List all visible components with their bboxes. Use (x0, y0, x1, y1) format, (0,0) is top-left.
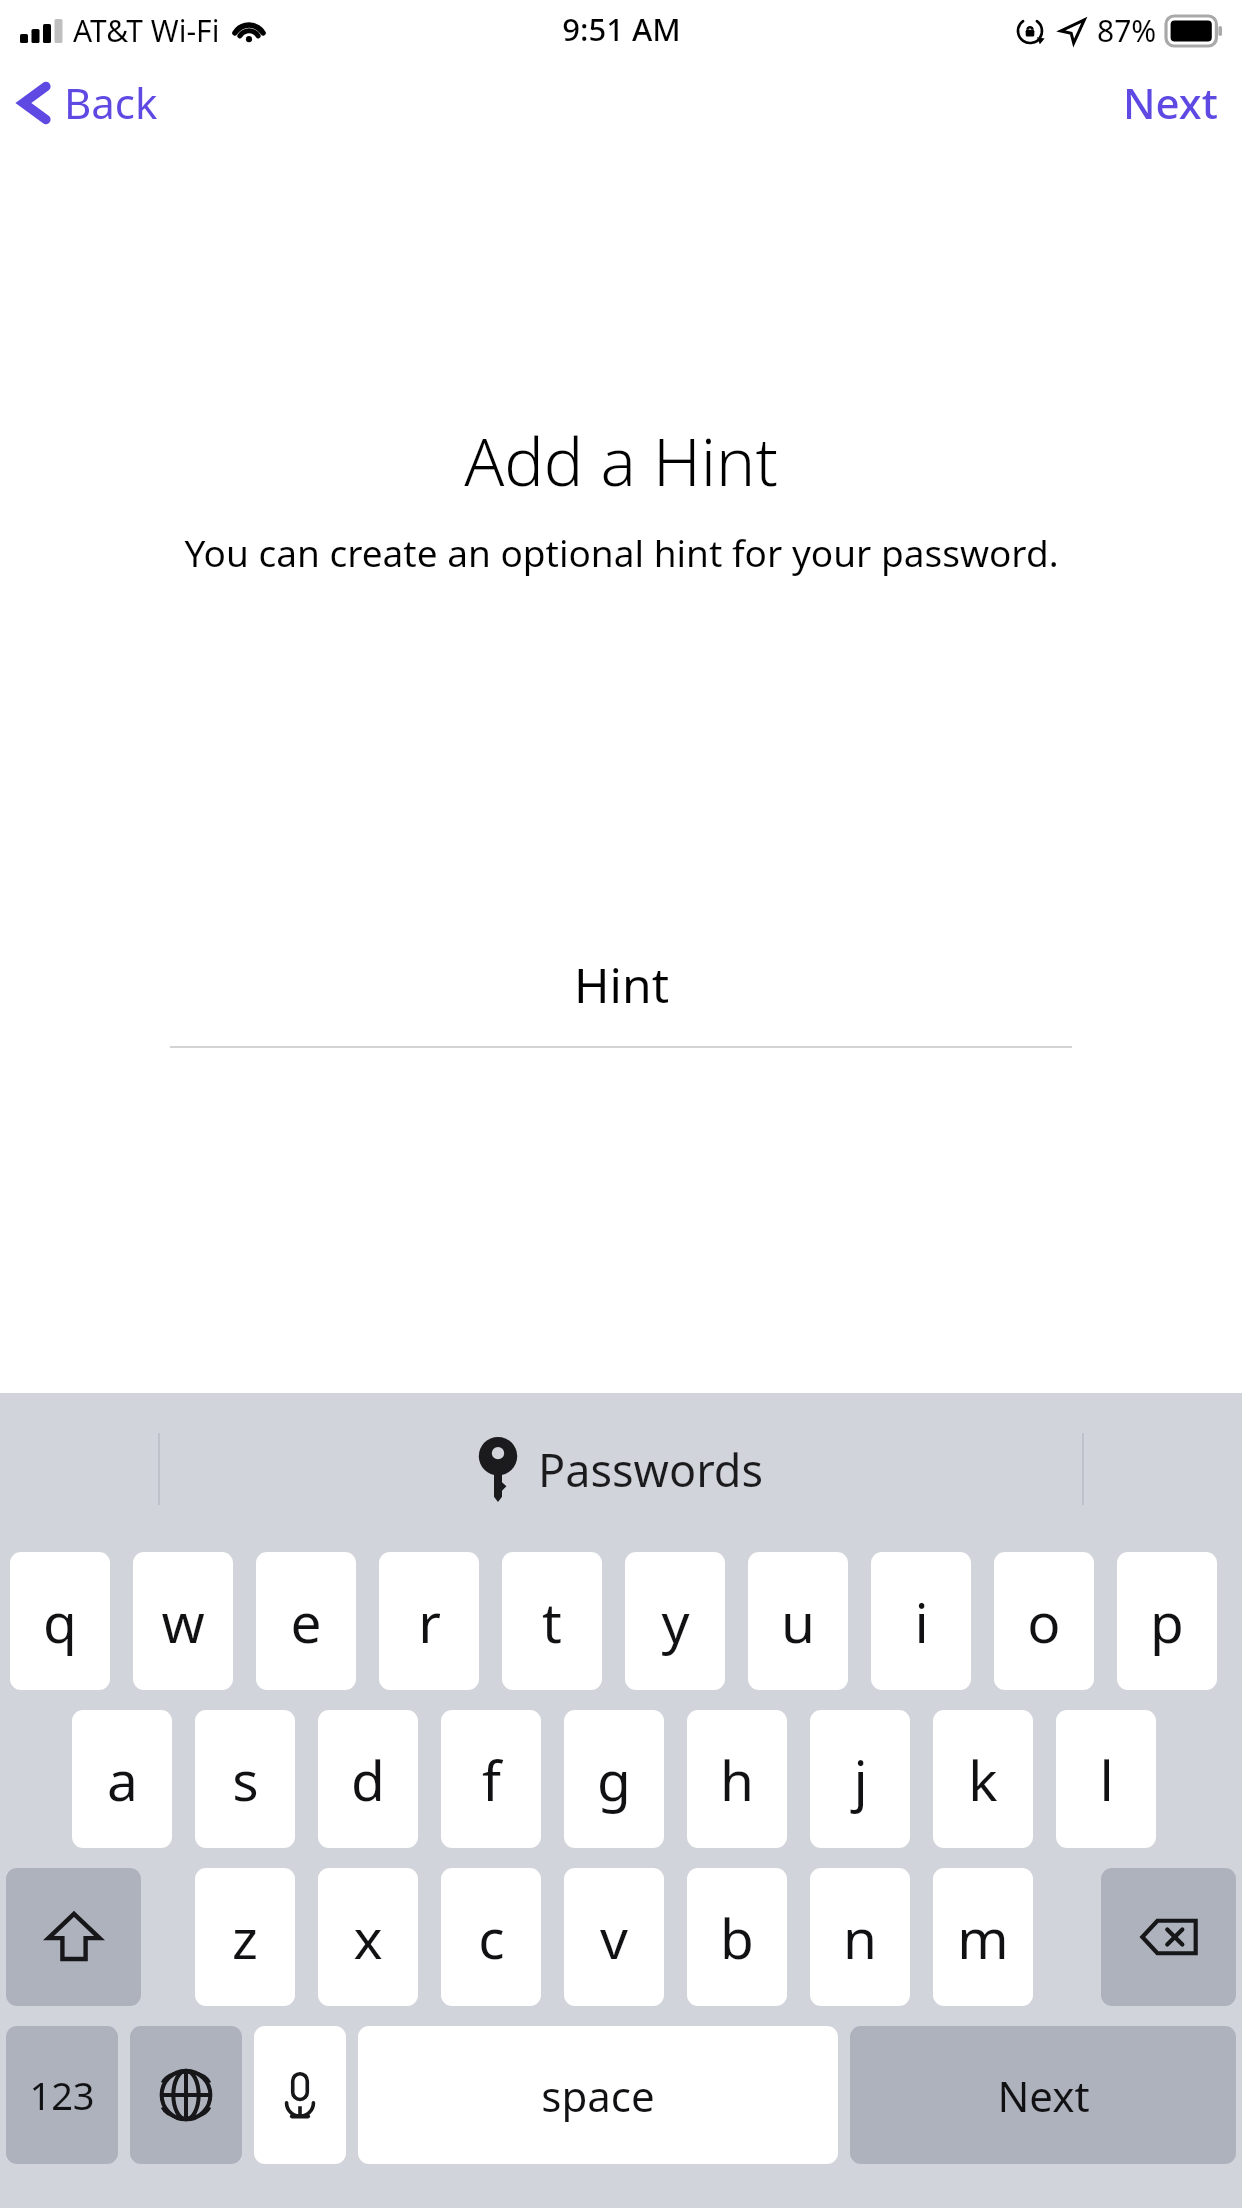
staticText: 87% (1097, 10, 1157, 51)
button[interactable]: j (810, 1710, 910, 1848)
button[interactable]: s (195, 1710, 295, 1848)
button[interactable]: Next (1099, 64, 1242, 141)
button[interactable]: Backspace (1101, 1868, 1236, 2006)
staticText: z (232, 1900, 258, 1975)
staticText: f (482, 1742, 501, 1817)
button[interactable]: a (72, 1710, 172, 1848)
staticText: i (914, 1584, 929, 1659)
staticText: Passwords (538, 1439, 764, 1500)
staticText: Hint (574, 952, 669, 1017)
button[interactable]: t (502, 1552, 602, 1690)
button[interactable]: v (564, 1868, 664, 2006)
staticText: t (542, 1584, 562, 1659)
button[interactable]: Next (850, 2026, 1236, 2164)
button[interactable]: p (1117, 1552, 1217, 1690)
staticText: y (661, 1584, 690, 1659)
button[interactable]: c (441, 1868, 541, 2006)
button[interactable]: e (256, 1552, 356, 1690)
staticText: Next (1123, 74, 1218, 131)
staticText: Add a Hint (464, 415, 778, 505)
staticText: n (843, 1900, 877, 1975)
button[interactable]: m (933, 1868, 1033, 2006)
staticText: u (781, 1584, 815, 1659)
staticText: b (720, 1900, 754, 1975)
staticText: space (541, 2067, 655, 2124)
button[interactable]: h (687, 1710, 787, 1848)
staticText: d (351, 1742, 385, 1817)
button[interactable]: n (810, 1868, 910, 2006)
staticText: l (1099, 1742, 1114, 1817)
staticText: g (597, 1742, 631, 1817)
button[interactable]: f (441, 1710, 541, 1848)
staticText: v (600, 1900, 628, 1975)
staticText: Next (997, 2067, 1090, 2124)
staticText: c (478, 1900, 505, 1975)
button[interactable]: b (687, 1868, 787, 2006)
button[interactable]: o (994, 1552, 1094, 1690)
staticText: a (107, 1742, 138, 1817)
staticText: AT&T Wi-Fi (73, 10, 220, 51)
staticText: h (720, 1742, 754, 1817)
button[interactable] (6, 1868, 141, 2006)
button[interactable]: z (195, 1868, 295, 2006)
button[interactable]: Passwords (478, 1436, 764, 1502)
button[interactable]: u (748, 1552, 848, 1690)
button[interactable]: w (133, 1552, 233, 1690)
staticText: 123 (29, 2069, 95, 2121)
staticText: j (853, 1742, 868, 1817)
button[interactable]: y (625, 1552, 725, 1690)
staticText: w (161, 1584, 205, 1659)
button[interactable]: r (379, 1552, 479, 1690)
button[interactable]: Hint (0, 940, 1242, 1060)
button[interactable]: g (564, 1710, 664, 1848)
staticText: You can create an optional hint for your… (184, 527, 1059, 577)
staticText: m (957, 1900, 1009, 1975)
button[interactable]: i (871, 1552, 971, 1690)
staticText: 9:51 AM (562, 8, 681, 50)
staticText: o (1027, 1584, 1061, 1659)
button[interactable]: Back (0, 66, 180, 139)
button[interactable]: l (1056, 1710, 1156, 1848)
staticText: k (968, 1742, 998, 1817)
staticText: Back (64, 74, 158, 131)
staticText: e (290, 1584, 322, 1659)
button[interactable]: k (933, 1710, 1033, 1848)
button[interactable]: x (318, 1868, 418, 2006)
button[interactable]: space (358, 2026, 838, 2164)
button[interactable]: Change keyboard (130, 2026, 242, 2164)
button[interactable]: 123 (6, 2026, 118, 2164)
button[interactable]: Dictate (254, 2026, 346, 2164)
staticText: r (418, 1584, 441, 1659)
button[interactable]: d (318, 1710, 418, 1848)
staticText: x (353, 1900, 383, 1975)
staticText: p (1150, 1584, 1184, 1659)
staticText: q (43, 1584, 77, 1659)
staticText: s (232, 1742, 259, 1817)
button[interactable]: q (10, 1552, 110, 1690)
